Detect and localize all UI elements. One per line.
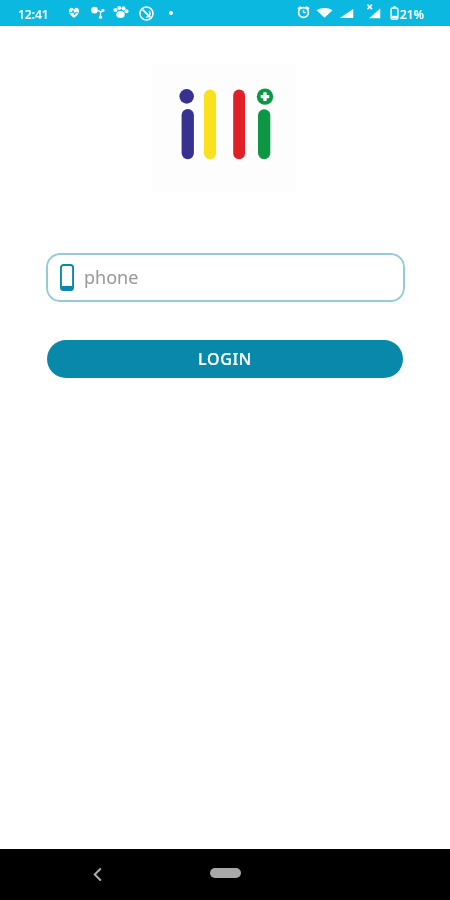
button[interactable]: LOGIN: [47, 340, 403, 378]
staticText: LOGIN: [198, 348, 252, 370]
button[interactable]: phone: [46, 253, 405, 302]
button[interactable]: Back: [77, 854, 117, 894]
staticText: 21%: [400, 6, 424, 22]
staticText: phone: [84, 265, 139, 290]
button[interactable]: Home: [190, 859, 260, 887]
staticText: 12:41: [18, 6, 49, 22]
